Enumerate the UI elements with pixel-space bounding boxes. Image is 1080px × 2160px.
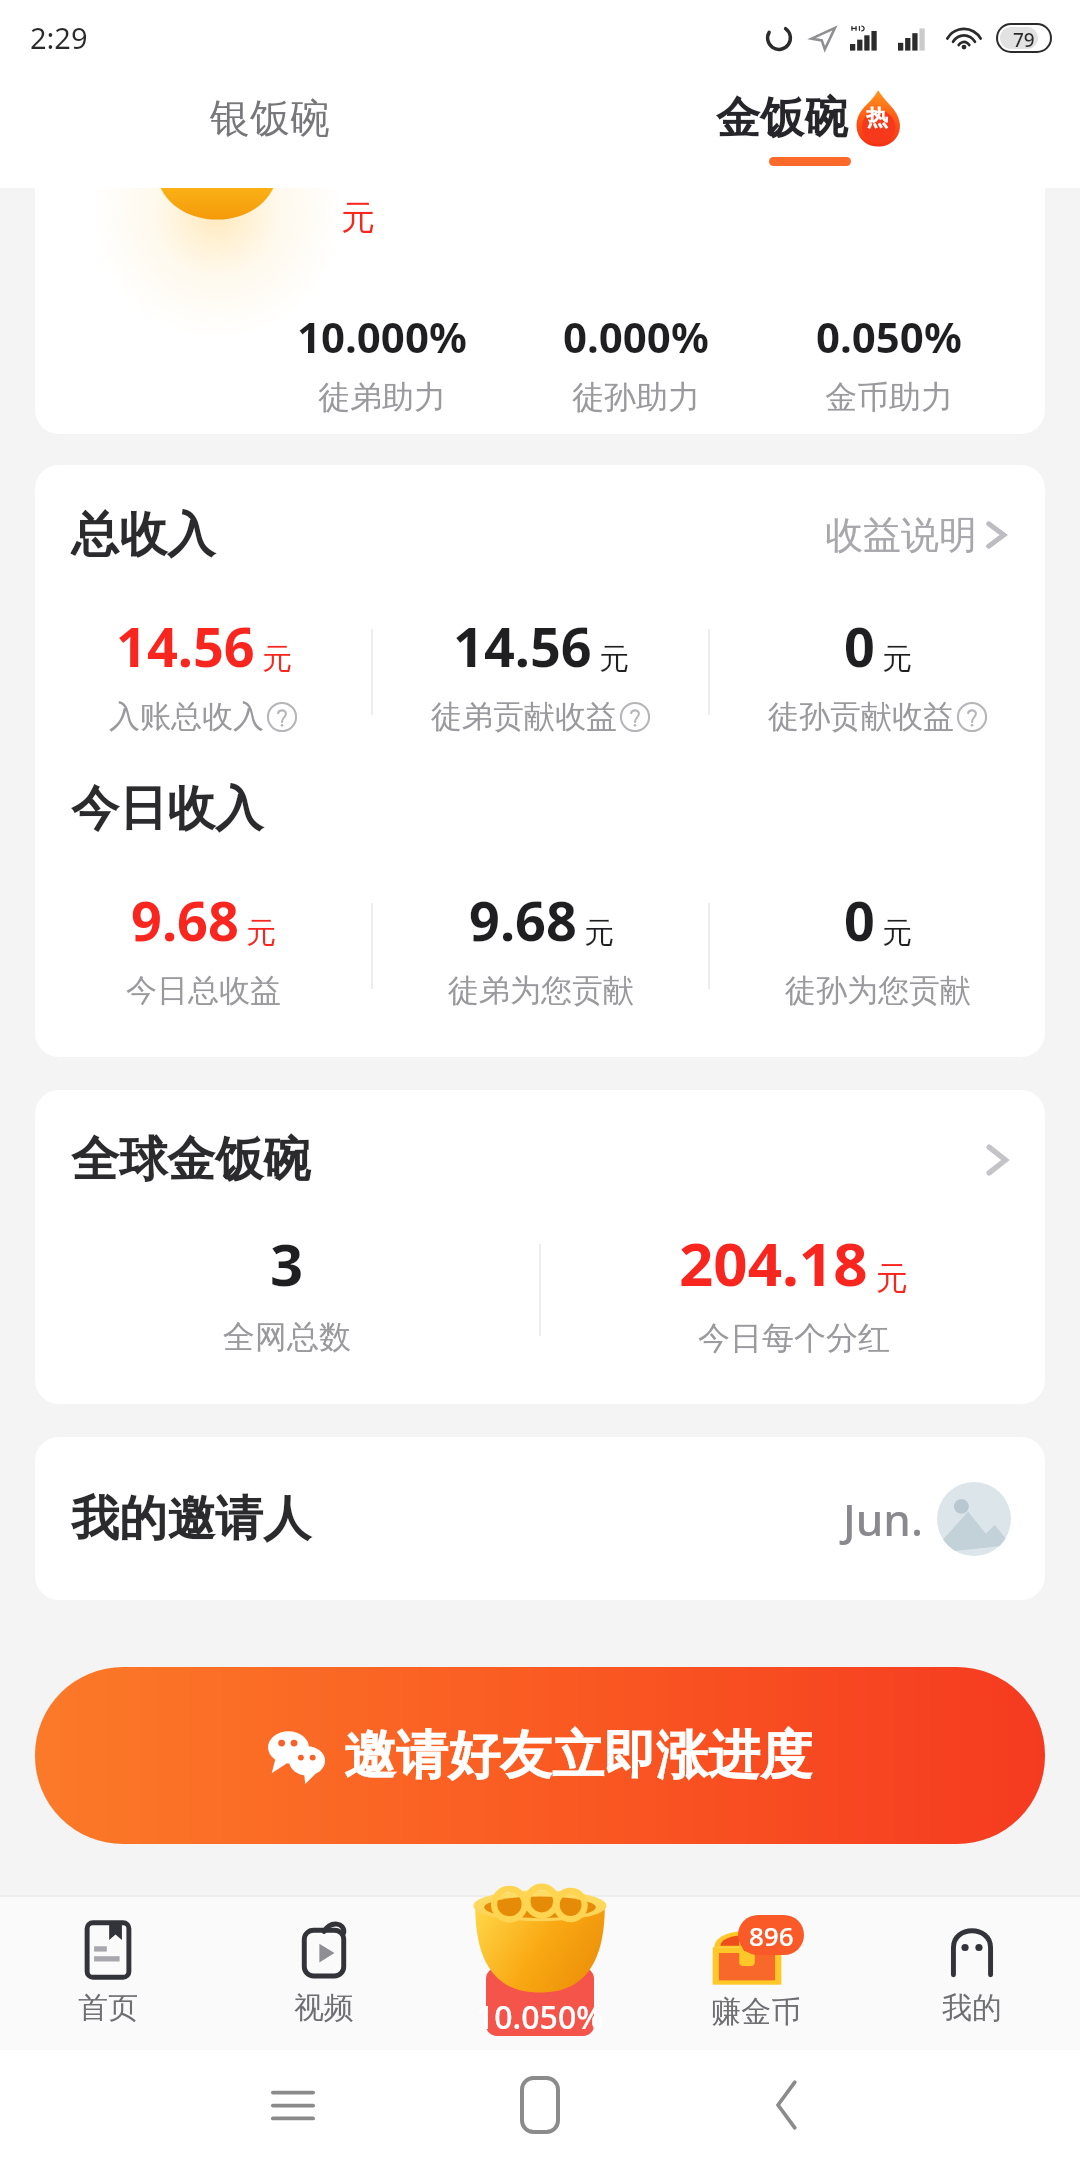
staticText: 0.050%	[816, 308, 962, 365]
button[interactable]: 我的	[864, 1895, 1080, 2050]
button[interactable]: 元	[35, 188, 1045, 434]
staticText: 我的	[942, 1989, 1002, 2027]
staticText: 徒孙贡献收益	[768, 697, 954, 736]
staticText: 银饭碗	[210, 93, 330, 143]
staticText: 79	[1013, 27, 1035, 49]
staticText: 全网总数	[223, 1317, 351, 1357]
staticText: 0	[844, 609, 875, 683]
button[interactable]: Back	[663, 2050, 910, 2160]
staticText: 总收入	[71, 505, 215, 565]
button[interactable]: 邀请好友立即涨进度	[35, 1667, 1045, 1844]
staticText: 今日总收益	[126, 971, 281, 1010]
button[interactable]: 896	[648, 1895, 864, 2050]
staticText: 14.56	[116, 609, 255, 683]
staticText: 10.000%	[297, 308, 467, 365]
staticText: 9.68	[131, 883, 239, 957]
button[interactable]: 收益说明	[819, 505, 1015, 565]
button[interactable]: 我的邀请人	[35, 1437, 1045, 1600]
staticText: 徒弟贡献收益	[431, 697, 617, 736]
staticText: 全球金饭碗	[71, 1130, 311, 1190]
staticText: 金币助力	[825, 377, 953, 417]
staticText: 元	[882, 640, 912, 678]
staticText: 元	[262, 640, 292, 678]
staticText: 2:29	[30, 18, 88, 57]
button[interactable]: 视频	[216, 1895, 432, 2050]
staticText: 元	[599, 640, 629, 678]
button[interactable]: Recents	[170, 2050, 416, 2160]
staticText: 视频	[294, 1989, 354, 2027]
staticText: 今日收入	[71, 779, 263, 839]
button[interactable]: 说明	[956, 701, 988, 733]
button[interactable]: 说明	[266, 701, 298, 733]
staticText: 今日每个分红	[698, 1318, 890, 1358]
staticText: 元	[882, 914, 912, 952]
staticText: 收益说明	[825, 511, 977, 559]
staticText: 邀请好友立即涨进度	[344, 1723, 812, 1789]
button[interactable]: 银饭碗	[0, 75, 540, 188]
staticText: 金饭碗	[716, 91, 848, 146]
staticText: 赚金币	[711, 1993, 801, 2031]
staticText: Jun.	[843, 1489, 923, 1549]
button[interactable]: 首页	[0, 1895, 216, 2050]
staticText: 首页	[78, 1989, 138, 2027]
staticText: 896	[749, 1918, 794, 1953]
staticText: 徒弟助力	[318, 377, 446, 417]
staticText: 徒孙助力	[572, 377, 700, 417]
staticText: 0	[844, 883, 875, 957]
staticText: 我的邀请人	[71, 1489, 311, 1549]
button[interactable]: 全球金饭碗	[35, 1090, 1045, 1404]
button[interactable]: 金饭碗 10.050%	[432, 1895, 648, 2050]
staticText: 3	[270, 1224, 304, 1303]
staticText: 10.050%	[476, 1995, 604, 2039]
staticText: 入账总收入	[109, 697, 264, 736]
staticText: 元	[341, 196, 375, 239]
staticText: 元	[876, 1258, 908, 1298]
button[interactable]: 金饭碗	[540, 75, 1080, 188]
staticText: 14.56	[453, 609, 592, 683]
staticText: 徒弟为您贡献	[448, 971, 634, 1010]
button[interactable]: 说明	[619, 701, 651, 733]
staticText: 9.68	[469, 883, 577, 957]
staticText: 热	[866, 104, 888, 132]
staticText: 0.000%	[563, 308, 709, 365]
staticText: 204.18	[679, 1222, 868, 1304]
staticText: 元	[246, 914, 276, 952]
button[interactable]: Home	[416, 2050, 663, 2160]
staticText: 元	[584, 914, 614, 952]
staticText: 徒孙为您贡献	[785, 971, 971, 1010]
